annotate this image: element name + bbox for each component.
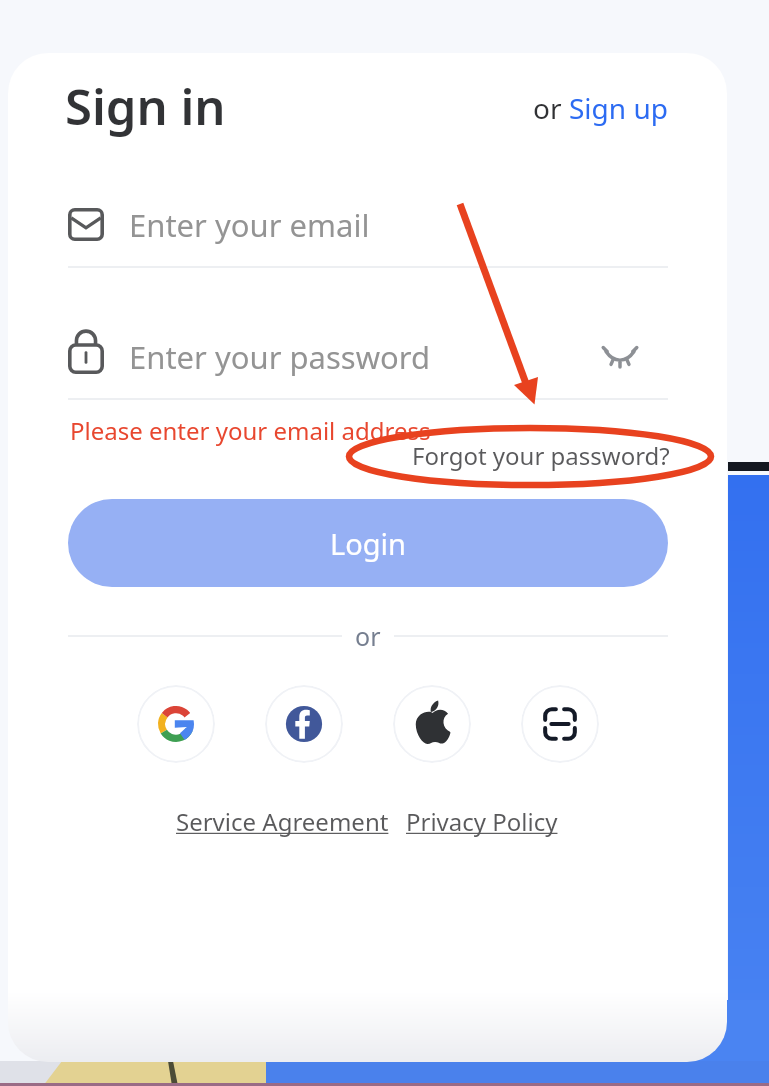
button[interactable]: Sign in with Facebook xyxy=(265,685,343,763)
button[interactable]: Enter your email xyxy=(68,196,668,254)
button[interactable]: Scan QR code xyxy=(521,685,599,763)
staticText: or xyxy=(355,619,381,653)
staticText: Forgot your password? xyxy=(412,439,670,472)
staticText: Service Agreement xyxy=(176,805,389,838)
button[interactable]: Forgot your password? xyxy=(404,435,678,476)
staticText: Please enter your email address xyxy=(70,414,431,447)
staticText: Enter your password xyxy=(129,336,431,378)
staticText: Login xyxy=(330,524,406,563)
button[interactable]: Service Agreement xyxy=(168,800,397,843)
button[interactable]: Sign in with Apple xyxy=(393,685,471,763)
staticText: Enter your email xyxy=(129,204,370,246)
button[interactable]: Show password xyxy=(592,328,648,384)
button[interactable]: Privacy Policy xyxy=(398,800,566,843)
staticText: or xyxy=(533,89,569,127)
button[interactable]: Sign in with Google xyxy=(137,685,215,763)
staticText: Sign in xyxy=(65,73,226,140)
button[interactable]: Enter your password xyxy=(68,328,668,386)
staticText: Sign up xyxy=(569,89,668,127)
staticText: Privacy Policy xyxy=(406,805,558,838)
button[interactable]: Login xyxy=(68,499,668,587)
button[interactable]: Sign up xyxy=(569,89,668,127)
